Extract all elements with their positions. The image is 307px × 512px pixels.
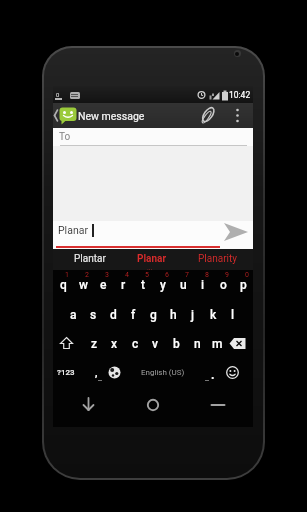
button[interactable] xyxy=(81,397,96,413)
staticText: 1 xyxy=(65,271,69,279)
staticText: To xyxy=(59,131,71,143)
button[interactable]: q xyxy=(23,273,103,297)
staticText: 10:42 xyxy=(229,90,251,100)
button[interactable]: k xyxy=(173,303,253,327)
button[interactable] xyxy=(229,337,247,350)
staticText: i xyxy=(201,278,205,292)
staticText: e xyxy=(100,278,107,292)
staticText: d xyxy=(110,308,117,322)
button[interactable]: x xyxy=(74,332,154,356)
staticText: f xyxy=(131,308,136,322)
staticText: y xyxy=(160,278,166,292)
button[interactable]: w xyxy=(43,273,123,297)
button[interactable]: Planar xyxy=(112,247,192,271)
staticText: 5 xyxy=(145,271,149,279)
button[interactable] xyxy=(226,366,239,379)
button[interactable]: f xyxy=(93,303,173,327)
staticText: 8 xyxy=(205,271,209,279)
button[interactable] xyxy=(223,222,250,242)
staticText: New message xyxy=(78,110,145,122)
button[interactable]: e xyxy=(63,273,143,297)
staticText: p xyxy=(240,278,247,292)
button[interactable] xyxy=(211,398,225,412)
button[interactable]: t xyxy=(103,273,183,297)
button[interactable] xyxy=(108,366,121,379)
button[interactable]: c xyxy=(95,332,175,356)
button[interactable]: y xyxy=(123,273,203,297)
button[interactable]: g xyxy=(113,303,193,327)
staticText: q xyxy=(60,278,67,292)
button[interactable] xyxy=(53,128,253,146)
staticText: 4 xyxy=(125,271,129,279)
staticText: English (US) xyxy=(141,368,185,377)
button[interactable]: r xyxy=(83,273,163,297)
staticText: m xyxy=(212,337,223,351)
button[interactable]: English (US) xyxy=(123,360,203,384)
staticText: g xyxy=(150,308,157,322)
staticText: k xyxy=(210,308,217,322)
staticText: t xyxy=(141,278,145,292)
staticText: h xyxy=(170,308,177,322)
staticText: 2 xyxy=(85,271,89,279)
button[interactable]: s xyxy=(53,303,133,327)
staticText: r xyxy=(121,278,126,292)
button[interactable]: v xyxy=(115,332,195,356)
button[interactable] xyxy=(60,337,73,350)
staticText: ... xyxy=(147,264,153,272)
button[interactable]: j xyxy=(153,303,233,327)
staticText: 6 xyxy=(165,271,169,279)
button[interactable] xyxy=(53,103,253,128)
button[interactable]: h xyxy=(133,303,213,327)
button[interactable]: n xyxy=(157,332,237,356)
button[interactable]: u xyxy=(143,273,223,297)
button[interactable]: Plantar xyxy=(50,247,130,271)
staticText: j xyxy=(191,308,195,322)
staticText: u xyxy=(180,278,187,292)
staticText: n xyxy=(194,337,201,351)
button[interactable]: o xyxy=(183,273,263,297)
button[interactable]: d xyxy=(73,303,153,327)
button[interactable]: b xyxy=(136,332,216,356)
staticText: v xyxy=(152,337,158,351)
staticText: b xyxy=(173,337,180,351)
button[interactable] xyxy=(53,221,253,250)
button[interactable]: m xyxy=(177,332,257,356)
staticText: l xyxy=(231,308,235,322)
staticText: Planar xyxy=(58,224,88,236)
staticText: w xyxy=(79,278,88,292)
staticText: z xyxy=(91,337,98,351)
staticText: s xyxy=(90,308,97,322)
staticText: , xyxy=(95,366,98,379)
staticText: ?123 xyxy=(57,368,75,377)
staticText: Plantar xyxy=(74,253,106,265)
button[interactable] xyxy=(146,398,160,412)
staticText: o xyxy=(220,278,227,292)
staticText: x xyxy=(111,337,118,351)
button[interactable]: p xyxy=(203,273,283,297)
staticText: 0 xyxy=(245,271,249,279)
staticText: a xyxy=(70,308,77,322)
button[interactable]: z xyxy=(54,332,134,356)
staticText: Planar xyxy=(137,253,167,265)
button[interactable]: , xyxy=(56,360,136,384)
staticText: Planarity xyxy=(198,253,237,265)
staticText: 9 xyxy=(225,271,229,279)
staticText: 3 xyxy=(105,271,109,279)
button[interactable]: l xyxy=(193,303,273,327)
staticText: 0 xyxy=(56,91,60,98)
button[interactable]: Planarity xyxy=(177,247,257,271)
button[interactable]: i xyxy=(163,273,243,297)
staticText: . xyxy=(211,368,215,382)
staticText: 7 xyxy=(185,271,189,279)
button[interactable]: . xyxy=(173,363,253,387)
button[interactable]: a xyxy=(33,303,113,327)
staticText: c xyxy=(132,337,139,351)
button[interactable]: ?123 xyxy=(26,360,106,384)
